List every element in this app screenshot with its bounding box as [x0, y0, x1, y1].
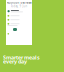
button[interactable]: Smarter meals: [3, 54, 40, 61]
staticText: Smarter meals: [3, 54, 40, 61]
staticText: every day: [3, 58, 27, 65]
staticText: Nutrition overview: [6, 1, 31, 4]
staticText: Today, 9 Jun: [10, 4, 27, 8]
